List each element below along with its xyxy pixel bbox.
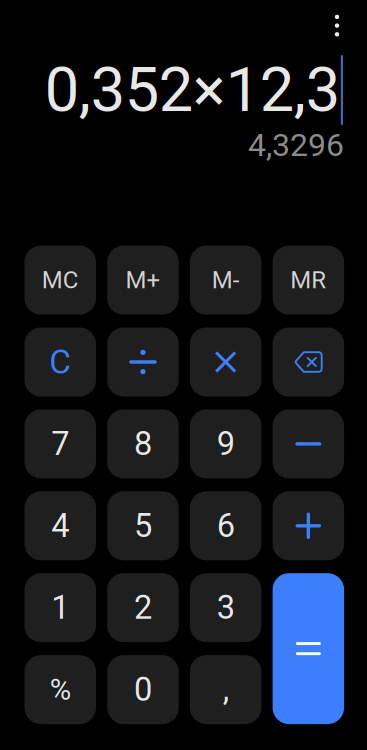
staticText: % [50,672,71,707]
staticText: 5 [134,507,152,545]
staticText: 2 [134,589,152,627]
button[interactable]: M+ [107,246,179,315]
button[interactable]: C [24,327,96,396]
button[interactable]: 6 [190,491,261,560]
staticText: 7 [51,425,69,463]
button[interactable]: MR [273,246,344,315]
button[interactable]: 2 [107,573,179,642]
button[interactable]: Backspace [273,327,344,396]
staticText: 0 [134,670,152,709]
staticText: 8 [134,425,152,463]
button[interactable]: Plus [273,491,344,560]
button[interactable]: Minus [273,409,344,478]
button[interactable]: Multiply [190,327,261,396]
staticText: 4 [51,507,69,545]
button[interactable]: 5 [107,491,179,560]
button[interactable]: 3 [190,573,261,642]
staticText: M+ [125,266,160,294]
staticText: 4,3296 [248,126,344,164]
button[interactable]: Equals [273,573,344,724]
staticText: 6 [217,507,235,545]
staticText: 3 [217,589,235,627]
button[interactable]: More options [314,1,360,51]
staticText: 9 [217,425,235,463]
button[interactable]: MC [24,246,96,315]
button[interactable]: % [24,655,96,724]
button[interactable]: 0 [107,655,179,724]
staticText: MR [290,266,326,294]
staticText: C [49,342,71,382]
button[interactable]: , [190,655,261,724]
button[interactable]: 1 [24,573,96,642]
button[interactable]: 9 [190,409,261,478]
staticText: , [223,670,229,709]
staticText: 0,352×12,3 [45,54,340,126]
button[interactable]: M- [190,246,261,315]
staticText: 1 [51,589,69,627]
button[interactable]: 4 [24,491,96,560]
button[interactable]: Divide [107,327,179,396]
staticText: M- [212,266,240,294]
button[interactable]: 7 [24,409,96,478]
staticText: MC [42,266,79,294]
button[interactable]: 8 [107,409,179,478]
